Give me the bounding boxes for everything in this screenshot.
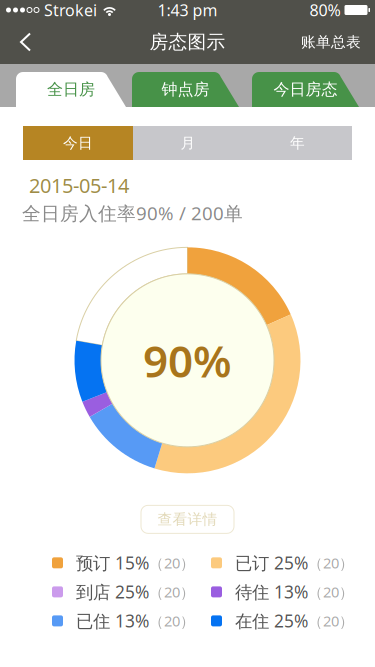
staticText: 全日房入住率90% / 200单 (22, 201, 243, 225)
staticText: （20） (149, 611, 195, 631)
staticText: （20） (308, 611, 354, 631)
button[interactable]: Back (6, 20, 46, 64)
staticText: （20） (149, 553, 195, 573)
staticText: （20） (308, 553, 354, 573)
staticText: 到店 25% (71, 580, 149, 603)
staticText: 已住 13% (71, 609, 149, 632)
staticText: 待住 13% (230, 580, 308, 603)
button[interactable]: 今日房态 (252, 72, 359, 107)
button[interactable]: 全日房 (16, 72, 126, 107)
button[interactable]: 查看详情 (141, 505, 234, 533)
staticText: （20） (149, 582, 195, 602)
staticText: 查看详情 (157, 510, 217, 528)
staticText: 在住 25% (230, 609, 308, 632)
staticText: 已订 25% (230, 551, 308, 574)
button[interactable]: 今日 (23, 126, 133, 160)
button[interactable]: 月 (133, 126, 243, 160)
button[interactable]: 年 (243, 126, 352, 160)
staticText: 年 (290, 134, 305, 152)
staticText: 90% (143, 331, 232, 389)
staticText: 1:43 pm (157, 0, 217, 21)
staticText: 2015-05-14 (29, 172, 129, 199)
button[interactable]: 钟点房 (132, 72, 239, 107)
button[interactable]: 账单总表 (293, 20, 369, 64)
staticText: 月 (180, 134, 195, 152)
staticText: （20） (308, 582, 354, 602)
staticText: 全日房 (47, 80, 95, 99)
staticText: 账单总表 (301, 33, 361, 51)
staticText: 80% (309, 0, 340, 21)
staticText: 钟点房 (161, 80, 209, 99)
staticText: 今日房态 (273, 80, 337, 99)
staticText: 预订 15% (71, 551, 149, 574)
staticText: 今日 (63, 134, 93, 152)
staticText: Strokei (44, 0, 97, 21)
staticText: 房态图示 (149, 30, 225, 53)
